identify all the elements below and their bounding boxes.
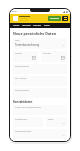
- staticText: Straße und Hausnummer: [15, 106, 42, 109]
- staticText: Titel: [15, 39, 20, 42]
- staticText: Beschreibung: [15, 65, 30, 68]
- button[interactable]: Telefonnummer: [13, 129, 67, 139]
- staticText: Kontaktdaten: [13, 100, 33, 104]
- button[interactable]: Stadt: [46, 117, 67, 127]
- staticText: Uhrzeit: [43, 52, 51, 55]
- button[interactable]: Ort / Raum: [13, 76, 67, 86]
- other: Expand: [62, 44, 65, 47]
- staticText: Stadt: [48, 118, 54, 121]
- other: Expand: [62, 134, 65, 137]
- staticText: Ort / Raum: [15, 77, 27, 80]
- other: Pick date: [32, 56, 36, 60]
- button[interactable]: Datum: [13, 51, 38, 62]
- other: Expand: [62, 122, 65, 125]
- staticText: Postleitzahl: [15, 118, 27, 121]
- button[interactable]: [12, 15, 31, 22]
- button[interactable]: Uhrzeit: [41, 51, 67, 62]
- staticText: Terminbezeichnung: [15, 43, 40, 47]
- other: Pick date: [61, 56, 65, 60]
- staticText: Neue persönliche Daten: [13, 31, 57, 36]
- button[interactable]: Home: [12, 23, 21, 28]
- staticText: Telefonnummer: [15, 130, 32, 133]
- button[interactable]: Titel: [13, 38, 67, 49]
- button[interactable]: Menu: [62, 16, 68, 21]
- staticText: Kunden: [33, 24, 42, 27]
- staticText: Home: [13, 24, 20, 27]
- staticText: Zuständigkeit: [15, 89, 30, 92]
- button[interactable]: Kunden: [32, 23, 43, 28]
- button[interactable]: Primary action: [48, 16, 61, 21]
- staticText: Datum: [15, 52, 23, 55]
- staticText: 09:41: [12, 10, 18, 13]
- staticText: Mehr: [44, 24, 50, 27]
- button[interactable]: Straße und Hausnummer: [13, 105, 67, 115]
- button[interactable]: Termine: [21, 23, 32, 28]
- staticText: Termine: [22, 24, 31, 27]
- button[interactable]: Mehr: [43, 23, 51, 28]
- button[interactable]: Postleitzahl: [13, 117, 43, 127]
- button[interactable]: Zuständigkeit: [13, 88, 67, 98]
- button[interactable]: Beschreibung: [13, 64, 67, 74]
